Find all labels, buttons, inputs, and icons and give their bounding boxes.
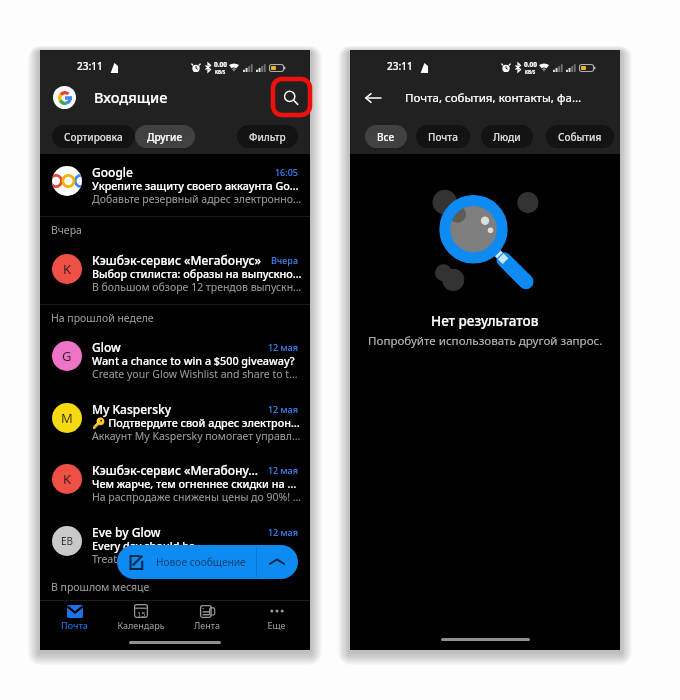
staticText: Вчера bbox=[238, 254, 298, 266]
button[interactable]: Еще bbox=[246, 600, 306, 650]
staticText: Eve by Glow bbox=[92, 524, 262, 540]
staticText: 0.00 bbox=[524, 60, 537, 69]
button[interactable]: Account bbox=[53, 86, 76, 109]
button[interactable]: G bbox=[40, 329, 310, 391]
staticText: G bbox=[62, 347, 72, 365]
staticText: Почта bbox=[428, 130, 458, 144]
staticText: Вчера bbox=[51, 223, 82, 237]
staticText: KB/S bbox=[215, 69, 226, 75]
staticText: Добавьте резервный адрес электронно… bbox=[92, 192, 302, 206]
button[interactable]: Сортировка bbox=[52, 125, 135, 148]
button[interactable]: Search bbox=[272, 79, 310, 117]
staticText: В большом обзоре 12 трендов выпускн… bbox=[92, 280, 302, 294]
staticText: K bbox=[63, 260, 72, 278]
staticText: Почта bbox=[61, 619, 88, 631]
staticText: Другие bbox=[147, 130, 183, 144]
staticText: Еще bbox=[267, 619, 286, 631]
button[interactable]: Google bbox=[40, 154, 310, 216]
staticText: Календарь bbox=[117, 619, 165, 631]
button[interactable]: События bbox=[546, 125, 614, 148]
staticText: Все bbox=[377, 130, 395, 144]
staticText: Нет результатов bbox=[431, 312, 539, 330]
staticText: K bbox=[63, 470, 72, 488]
staticText: Чем жарче, тем огненнее скидки на Ali… bbox=[92, 476, 302, 491]
staticText: Новое сообщение bbox=[156, 555, 246, 569]
staticText: Treat… bbox=[92, 552, 302, 566]
button[interactable]: Новое сообщение bbox=[117, 545, 298, 579]
staticText: Create your Glow Wishlist and share to t… bbox=[92, 367, 302, 381]
staticText: Попробуйте использовать другой запрос. bbox=[368, 333, 603, 349]
staticText: Почта, события, контакты, фа… bbox=[405, 90, 582, 106]
staticText: Кэшбэк-сервис «Мегабонус» bbox=[92, 252, 262, 268]
staticText: 12 мая bbox=[238, 526, 298, 538]
staticText: Сортировка bbox=[64, 130, 123, 144]
staticText: Фильтр bbox=[249, 130, 286, 144]
staticText: 12 мая bbox=[238, 464, 298, 476]
staticText: EB bbox=[61, 534, 74, 548]
staticText: 12 мая bbox=[238, 341, 298, 353]
staticText: 23:11 bbox=[387, 59, 413, 73]
staticText: Укрепите защиту своего аккаунта Goo… bbox=[92, 178, 302, 193]
button[interactable]: 15 bbox=[111, 600, 171, 650]
staticText: 15 bbox=[137, 609, 146, 619]
staticText: На прошлой неделе bbox=[51, 311, 154, 325]
button[interactable]: K bbox=[40, 242, 310, 304]
staticText: Входящие bbox=[94, 87, 168, 107]
staticText: События bbox=[558, 130, 602, 144]
button[interactable]: Back bbox=[354, 79, 392, 117]
staticText: Want a chance to win a $500 giveaway? bbox=[92, 353, 302, 368]
button[interactable]: K bbox=[40, 452, 310, 514]
staticText: Glow bbox=[92, 339, 262, 355]
staticText: В прошлом месяце bbox=[51, 580, 150, 594]
staticText: Google bbox=[92, 164, 262, 180]
button[interactable]: Фильтр bbox=[237, 125, 298, 148]
staticText: Кэшбэк-сервис «Мегабону… bbox=[92, 462, 262, 478]
button[interactable]: M bbox=[40, 391, 310, 453]
staticText: Люди bbox=[493, 130, 521, 144]
button[interactable]: Люди bbox=[481, 125, 533, 148]
staticText: 12 мая bbox=[238, 403, 298, 415]
staticText: KB/S bbox=[525, 69, 536, 75]
button[interactable]: Лента bbox=[177, 600, 237, 650]
staticText: M bbox=[61, 409, 73, 427]
staticText: Every day should be… bbox=[92, 538, 302, 553]
button[interactable]: EB bbox=[40, 514, 310, 576]
button[interactable]: Все bbox=[365, 125, 407, 148]
staticText: 23:11 bbox=[77, 59, 103, 73]
staticText: Выбор стилиста: образы на выпускно… bbox=[92, 266, 302, 281]
staticText: На распродаже снижены цены до 90%! … bbox=[92, 490, 302, 504]
button[interactable]: Почта bbox=[416, 125, 470, 148]
staticText: 🔑 Подтвердите свой адрес электронн… bbox=[92, 415, 302, 430]
staticText: Лента bbox=[194, 619, 220, 631]
staticText: 16:05 bbox=[238, 166, 298, 178]
staticText: My Kaspersky bbox=[92, 401, 262, 417]
button[interactable]: Почта bbox=[44, 600, 104, 650]
button[interactable]: Другие bbox=[135, 125, 195, 148]
staticText: Аккаунт My Kaspersky помогает управл… bbox=[92, 429, 302, 443]
staticText: 0.00 bbox=[214, 60, 227, 69]
